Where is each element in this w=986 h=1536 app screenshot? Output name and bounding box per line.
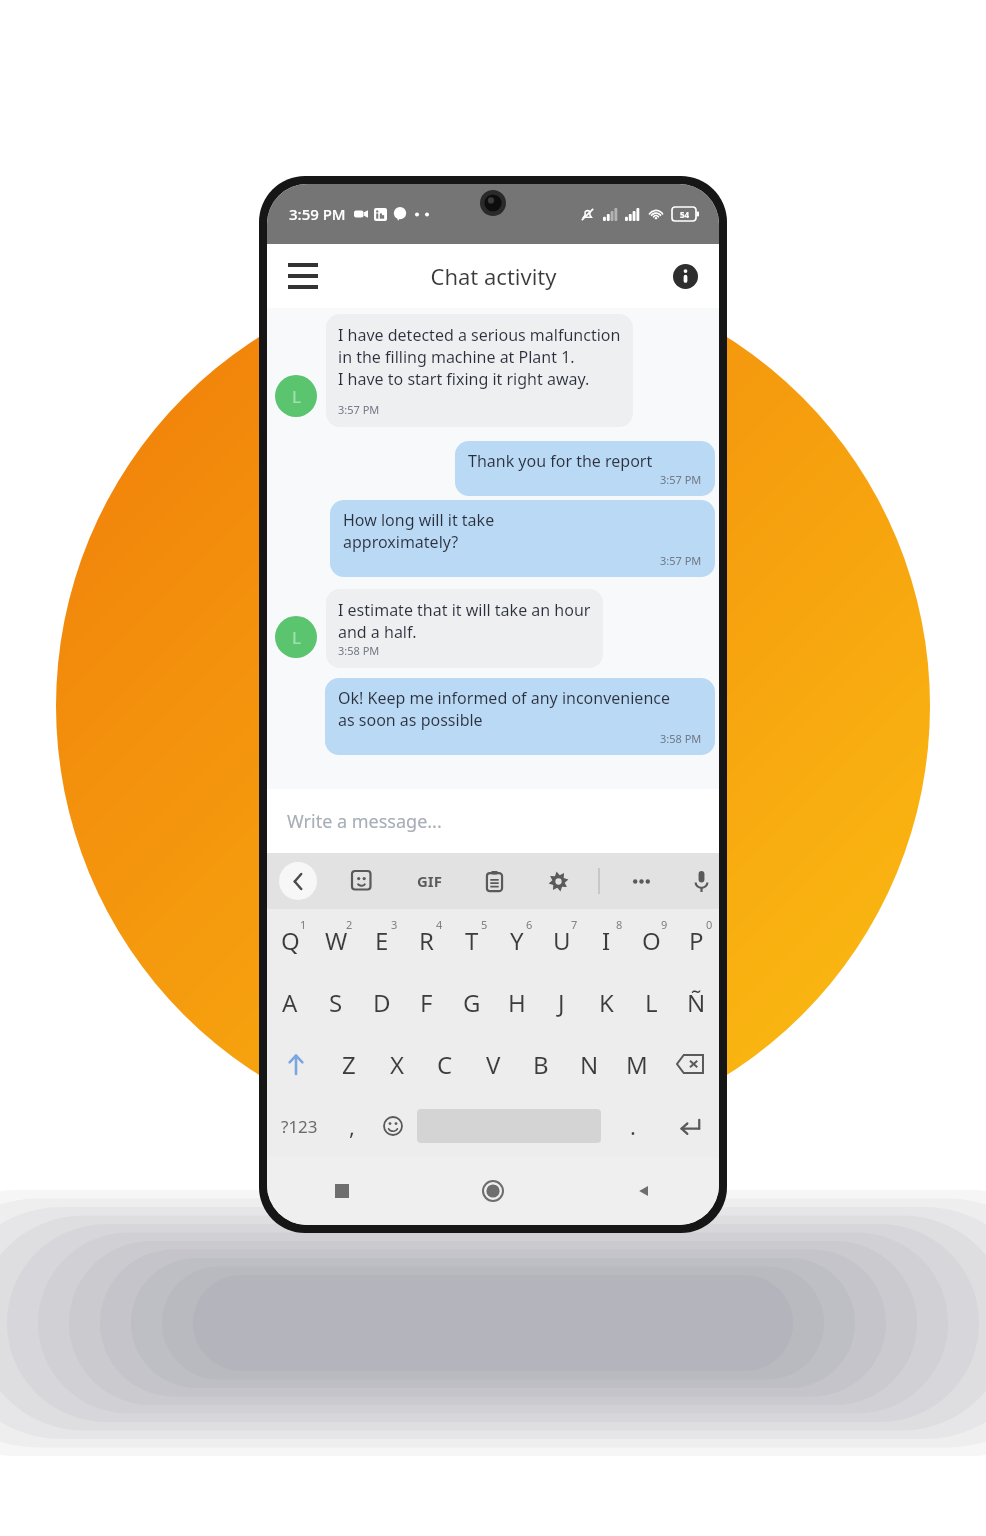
button[interactable]: Shift	[267, 1033, 325, 1095]
button[interactable]: I	[584, 909, 629, 971]
button[interactable]: Back	[568, 1157, 719, 1225]
staticText: 5	[481, 917, 488, 932]
button[interactable]: G	[449, 971, 494, 1033]
button[interactable]: B	[517, 1033, 565, 1095]
button[interactable]: Y	[494, 909, 539, 971]
button[interactable]: N	[565, 1033, 613, 1095]
staticText: K	[599, 986, 614, 1019]
button[interactable]: Ok! Keep me informed of any inconvenienc…	[325, 678, 715, 755]
staticText: 3:58 PM	[338, 643, 380, 658]
button[interactable]: .	[605, 1095, 660, 1157]
button[interactable]: Backspace	[661, 1033, 719, 1095]
staticText: Z	[342, 1048, 356, 1081]
button[interactable]: Chat info	[665, 256, 705, 296]
button[interactable]: Write a message...	[267, 789, 719, 853]
button[interactable]: U	[539, 909, 584, 971]
staticText: Thank you for the report	[468, 450, 653, 472]
staticText: G	[463, 986, 481, 1019]
staticText: as soon as possible	[338, 709, 483, 731]
staticText: 6	[526, 917, 533, 932]
button[interactable]: T	[449, 909, 494, 971]
button[interactable]: X	[373, 1033, 421, 1095]
button[interactable]: Home	[417, 1157, 568, 1225]
button[interactable]: Clipboard	[475, 862, 513, 900]
staticText: Write a message...	[287, 809, 442, 834]
staticText: in the filling machine at Plant 1.	[338, 346, 575, 368]
staticText: O	[642, 924, 661, 957]
staticText: H	[508, 986, 526, 1019]
button[interactable]: I have detected a serious malfunction	[326, 314, 633, 427]
staticText: T	[465, 924, 479, 957]
button[interactable]: O	[629, 909, 674, 971]
button[interactable]: Voice input	[684, 862, 719, 900]
staticText: W	[325, 924, 348, 957]
button[interactable]: A	[267, 971, 313, 1033]
staticText: L	[292, 385, 301, 408]
button[interactable]: F	[404, 971, 449, 1033]
staticText: I	[602, 924, 611, 957]
staticText: 3:57 PM	[660, 553, 702, 568]
staticText: L	[292, 626, 301, 649]
button[interactable]: Thank you for the report	[455, 441, 715, 496]
button[interactable]: P	[674, 909, 719, 971]
staticText: 4	[436, 917, 443, 932]
button[interactable]: D	[359, 971, 404, 1033]
staticText: I have detected a serious malfunction	[338, 324, 621, 346]
button[interactable]: E	[359, 909, 404, 971]
button[interactable]: ,	[331, 1095, 372, 1157]
staticText: .	[630, 1111, 636, 1141]
staticText: 9	[661, 917, 668, 932]
button[interactable]: L	[275, 616, 317, 658]
button[interactable]: ?123	[267, 1095, 331, 1157]
staticText: B	[533, 1048, 549, 1081]
button[interactable]: L	[629, 971, 674, 1033]
button[interactable]: Emoji	[372, 1095, 413, 1157]
staticText: F	[420, 986, 433, 1019]
staticText: L	[645, 986, 658, 1019]
button[interactable]: I estimate that it will take an hour	[326, 589, 603, 668]
button[interactable]: C	[421, 1033, 469, 1095]
button[interactable]: Open navigation menu	[279, 252, 327, 300]
staticText: E	[375, 924, 389, 957]
staticText: C	[437, 1048, 453, 1081]
button[interactable]: M	[613, 1033, 661, 1095]
button[interactable]: Recent apps	[267, 1157, 417, 1225]
button[interactable]: How long will it take	[330, 500, 715, 577]
button[interactable]: Stickers	[343, 862, 381, 900]
staticText: I have to start fixing it right away.	[338, 368, 590, 390]
button[interactable]: More options	[622, 862, 660, 900]
button[interactable]: Enter	[660, 1095, 719, 1157]
staticText: Ñ	[687, 986, 706, 1019]
staticText: 3:57 PM	[660, 472, 702, 487]
staticText: A	[282, 986, 298, 1019]
staticText: Chat activity	[430, 261, 557, 291]
button[interactable]: Q	[267, 909, 313, 971]
button[interactable]: GIF	[409, 861, 449, 901]
button[interactable]: Back	[279, 862, 317, 900]
staticText: Q	[281, 924, 300, 957]
staticText: 7	[571, 917, 578, 932]
button[interactable]: W	[313, 909, 359, 971]
staticText: 1	[300, 917, 307, 932]
staticText: 2	[346, 917, 353, 932]
staticText: 3:59 PM	[289, 204, 346, 224]
button[interactable]: Settings	[539, 862, 577, 900]
staticText: 8	[616, 917, 623, 932]
button[interactable]: Ñ	[674, 971, 719, 1033]
staticText: ,	[349, 1111, 355, 1141]
staticText: GIF	[417, 871, 442, 891]
staticText: approximately?	[343, 531, 459, 553]
staticText: D	[373, 986, 391, 1019]
button[interactable]: L	[275, 375, 317, 417]
staticText: M	[626, 1048, 648, 1081]
button[interactable]: R	[404, 909, 449, 971]
button[interactable]: Z	[325, 1033, 373, 1095]
staticText: I estimate that it will take an hour	[338, 599, 591, 621]
button[interactable]: K	[584, 971, 629, 1033]
button[interactable]: H	[494, 971, 539, 1033]
button[interactable]: J	[539, 971, 584, 1033]
staticText: S	[329, 986, 343, 1019]
button[interactable]: V	[469, 1033, 517, 1095]
button[interactable]: S	[313, 971, 359, 1033]
